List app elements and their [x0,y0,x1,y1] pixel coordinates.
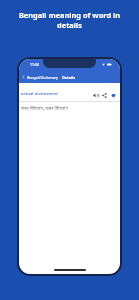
staticText: Bengali meaning of word in details [11,10,128,30]
button[interactable]: Pronounce [91,90,100,100]
button[interactable]: Details [61,75,77,80]
button[interactable]: Back [20,72,27,82]
staticText: actual investment [21,90,58,96]
staticText: Bengali Dictionary [27,75,58,80]
staticText: Details [62,75,76,80]
button[interactable]: Share [100,90,109,100]
staticText: বাস্তব বিনিয়োগ, বাস্তব বিনিয়োগ [21,105,68,112]
staticText: 11:34 [30,62,39,67]
button[interactable]: Favorite [109,90,118,100]
